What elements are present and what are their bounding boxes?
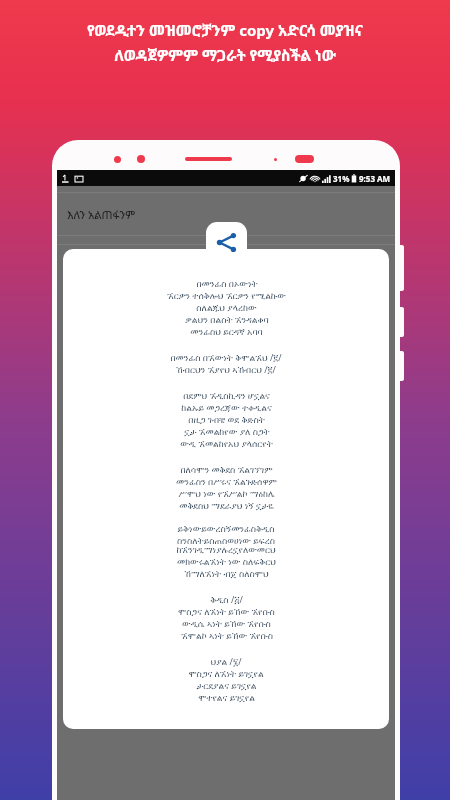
staticText: ከኧንገዲማነያሉረኗየለውመርህ [176, 546, 276, 555]
staticText: ይቅነውይውረስኝመንፈስቅዲስ [177, 525, 275, 534]
staticText: ስለልጁህ ያላረከው [196, 301, 257, 313]
staticText: መንፈስህ ይርዳኛ አባባ [190, 325, 263, 337]
staticText: ውዲ ኧመልከየአህ ያላሰርየት [180, 437, 273, 449]
staticText: መቅደስህ ማደራያህ ነኝ ኗታዬ [179, 499, 274, 511]
staticText: ኧርቃን ተሰቅሎህ ኧርቃን የሚልኩው [167, 289, 286, 301]
button[interactable]: እለን አልጠፋንም [57, 193, 395, 235]
staticText: በመንፈስ በኧውነት ቅሞልኧህ /፪/ [170, 351, 282, 363]
staticText: ለወዳጀዎምም ማጋራት የሚያስችል ነው [114, 45, 336, 65]
staticText: ሞተየልና ይገኗየል [198, 691, 255, 703]
staticText: በዚጋ ገብቼ ወደ ቅድስት [188, 413, 265, 425]
staticText: የወደዲተን መዝመሮቻንም copy አድርሳ መያዝና [87, 20, 363, 40]
staticText: በመንፈስ በኦውነት [196, 277, 258, 289]
staticText: ታርደያልና ይገኗየል [196, 679, 257, 691]
staticText: ውዲሴ ኣነት ይኸው ኧየሱስ [182, 617, 271, 629]
staticText: ሞስጋና ለኧነት ይኸው ኧየሱስ [178, 605, 275, 617]
staticText: 9:53 AM [359, 173, 391, 184]
staticText: ኗታ ኧመልከየው ያለ ስጋት [184, 425, 270, 437]
staticText: በደምህ ኧዲስኪዳን ሆኗልና [183, 389, 270, 401]
staticText: ኸብርህን ኧያየህ ኣኸብርህ /፪/ [176, 363, 276, 375]
staticText: ስንስለትይስጠስወሀነው ይፍረስ [177, 534, 275, 546]
staticText: ቅዲስ /፭/ [210, 593, 243, 605]
staticText: ከልኡይ መጋረጃው ተቀዲልና [181, 401, 272, 413]
staticText: ኸማለኧነት ብጀ ስለስሞህ [184, 567, 269, 579]
staticText: ቃልህን በልስት ኧንዳልቀባ [185, 313, 269, 325]
staticText: ሞስጋና ለኧነት ይገኗየል [188, 667, 264, 679]
button[interactable]: Share [206, 222, 247, 263]
staticText: ኧሞልኮ ኣነት ይኸው ኧየሱስ [181, 629, 273, 641]
staticText: ህያል /፮/ [210, 655, 242, 667]
staticText: መንፈስን በሥሩና ኧልጉድሰዋም [176, 475, 277, 487]
staticText: ሥሞህ ነው የኧሥልኮ ማዕከሌ [178, 487, 275, 499]
button[interactable]: በመንፈስ በኦውነት [63, 249, 389, 729]
staticText: መክውሩልኧነት ነው ስለፍቅርህ [177, 555, 276, 567]
staticText: 31% [333, 173, 350, 184]
staticText: እለን አልጠፋንም [67, 207, 136, 222]
staticText: በለሳሞን መቅደስ ኧልገኘገም [180, 463, 273, 475]
